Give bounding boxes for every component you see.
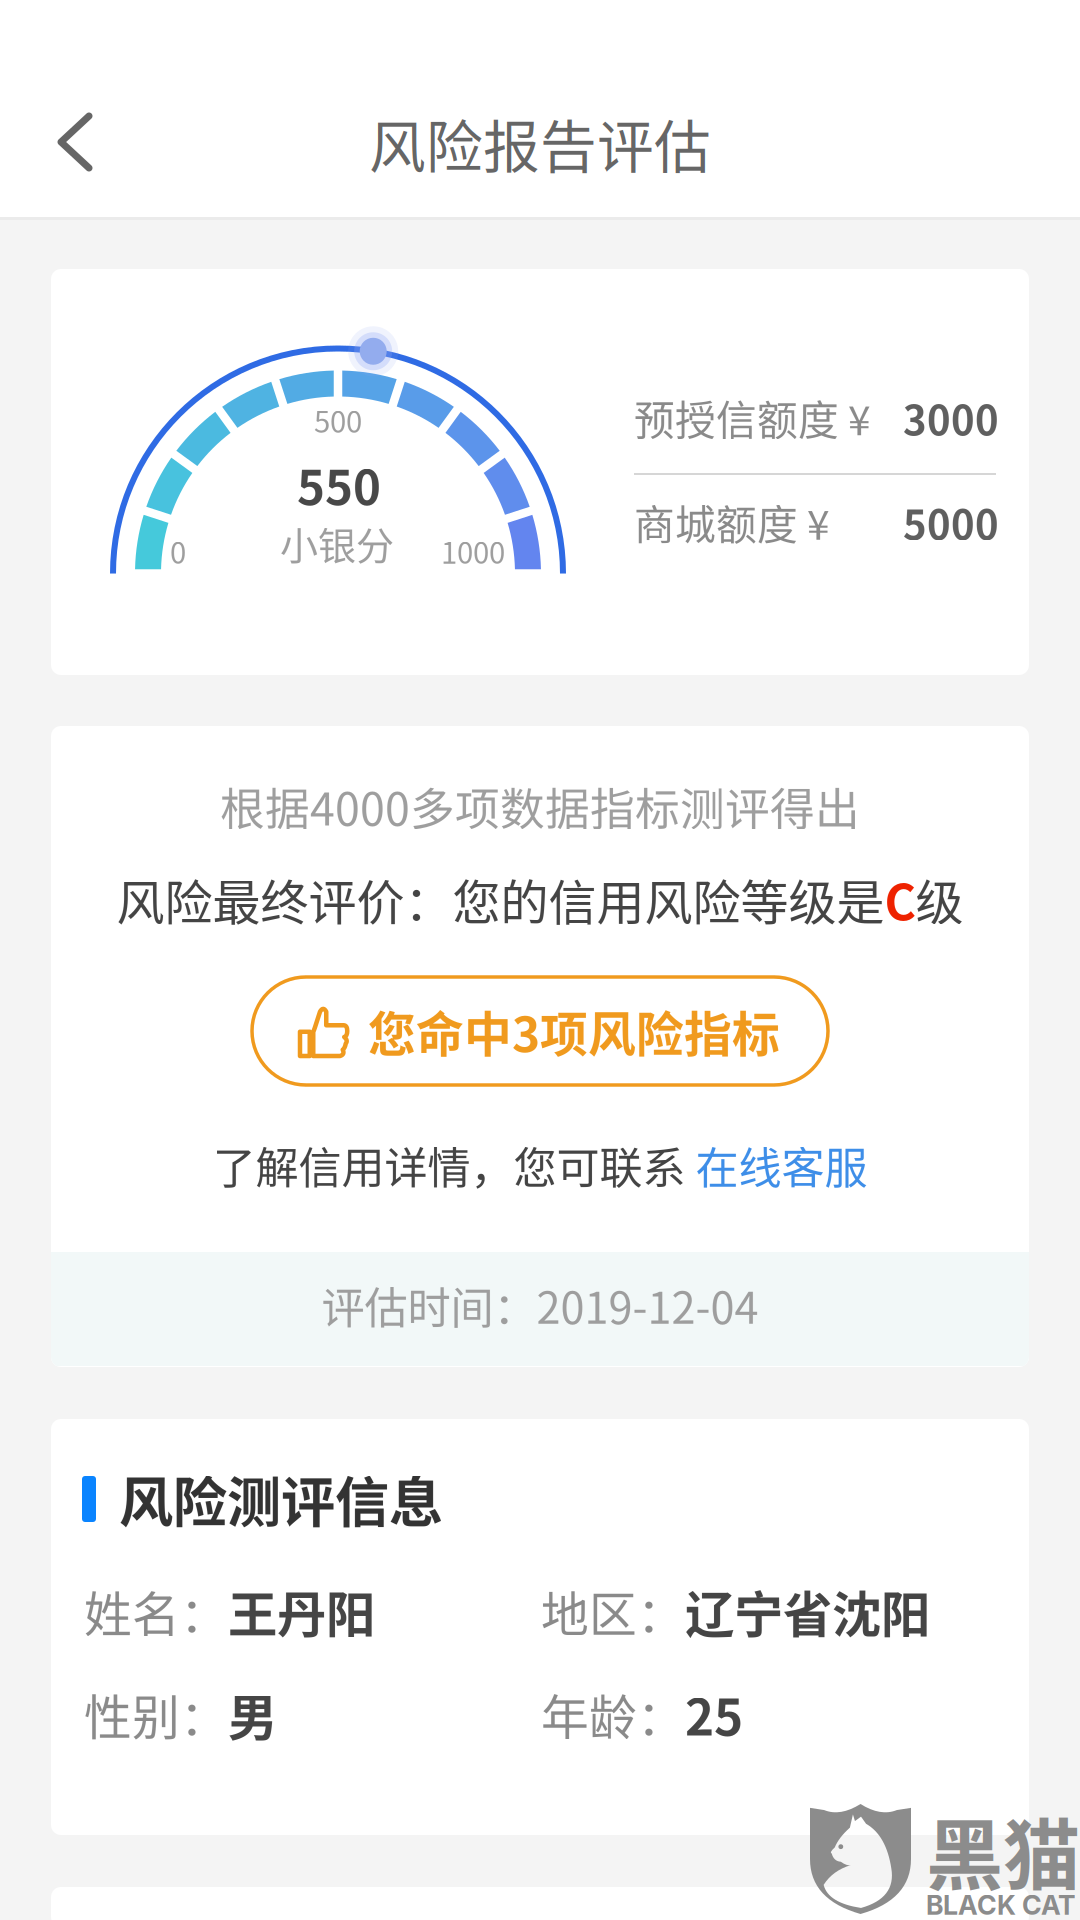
staticText: 3000	[903, 389, 999, 446]
staticText: 商城额度 ¥	[634, 493, 830, 551]
staticText: 性别：	[84, 1679, 228, 1748]
staticText: 姓名：	[84, 1576, 228, 1645]
staticText: 25	[685, 1678, 743, 1750]
staticText: 风险最终评价：您的信用风险等级是	[116, 864, 884, 934]
staticText: 500	[314, 399, 362, 441]
staticText: 550	[297, 450, 381, 518]
staticText: 根据4000多项数据指标测评得出	[220, 774, 860, 838]
staticText: 风险报告评估	[369, 102, 711, 184]
button[interactable]: Back	[0, 67, 150, 217]
staticText: 级	[915, 864, 963, 934]
staticText: 了解信用详情，您可联系	[212, 1134, 695, 1196]
staticText: 小银分	[280, 515, 394, 570]
button[interactable]: 您命中3项风险指标	[252, 977, 828, 1085]
staticText: 评估时间：2019-12-04	[321, 1274, 758, 1336]
staticText: 男	[228, 1678, 277, 1750]
staticText: 风险测评信息	[119, 1460, 443, 1538]
staticText: BLACK CAT	[926, 1889, 1076, 1920]
staticText: C	[884, 864, 915, 934]
staticText: 王丹阳	[228, 1575, 375, 1647]
staticText: 年龄：	[541, 1679, 685, 1748]
staticText: 辽宁省沈阳	[685, 1575, 930, 1647]
staticText: 您命中3项风险指标	[368, 996, 780, 1065]
staticText: 黑猫	[926, 1794, 1080, 1906]
staticText: 5000	[903, 493, 999, 551]
staticText: 在线客服	[695, 1134, 867, 1196]
button[interactable]: 在线客服	[695, 1134, 867, 1196]
staticText: 地区：	[541, 1576, 685, 1645]
staticText: 1000	[441, 530, 505, 572]
staticText: 预授信额度 ¥	[634, 388, 871, 447]
staticText: 0	[170, 530, 186, 572]
